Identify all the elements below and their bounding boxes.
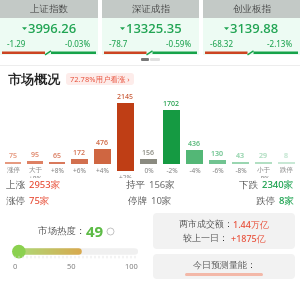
staticText: 1.44万亿 <box>233 218 269 230</box>
staticText: +6% <box>73 166 86 175</box>
button[interactable]: 95 <box>24 92 46 178</box>
staticText: 476 <box>96 138 109 148</box>
staticText: 130 <box>211 149 224 159</box>
button[interactable]: 75 <box>2 92 24 178</box>
button[interactable]: 72.78%用户看涨 › <box>66 73 134 85</box>
staticText: -78.7 <box>109 38 128 49</box>
staticText: 72.78%用户看涨 › <box>70 74 130 84</box>
staticText: 市场热度： <box>38 225 86 237</box>
button[interactable]: 130 <box>206 92 229 178</box>
staticText: -4% <box>189 166 201 175</box>
staticText: 较上一日： <box>183 232 228 243</box>
button[interactable]: 停牌 <box>102 194 198 207</box>
staticText: 3139.88 <box>230 19 279 37</box>
button[interactable]: 两市成交额： <box>153 213 295 249</box>
staticText: 涨停 <box>7 166 20 174</box>
staticText: 跌停 <box>256 195 275 207</box>
staticText: 2145 <box>117 92 134 102</box>
staticText: 49 <box>86 221 104 241</box>
button[interactable]: 下跌 <box>198 178 294 191</box>
button[interactable]: 172 <box>68 92 91 178</box>
staticText: 今日预测量能： <box>193 259 256 270</box>
staticText: 小于 <box>257 166 270 174</box>
staticText: -1.29 <box>7 38 26 49</box>
staticText: 市场概况 <box>8 71 60 87</box>
staticText: +4% <box>96 166 109 175</box>
staticText: -8% <box>258 174 270 178</box>
staticText: 50 <box>67 261 76 271</box>
staticText: -0.03% <box>65 38 91 49</box>
staticText: -0.59% <box>166 38 192 49</box>
button[interactable]: 436 <box>183 92 206 178</box>
staticText: 跌停 <box>280 166 293 174</box>
staticText: 3996.26 <box>28 19 77 37</box>
button[interactable]: 29 <box>252 92 275 178</box>
staticText: 0% <box>144 166 154 175</box>
staticText: 2953家 <box>29 178 61 191</box>
staticText: 涨停 <box>6 195 25 207</box>
button[interactable]: 涨停 <box>6 194 102 207</box>
button[interactable]: 市场热度： <box>5 213 146 277</box>
button[interactable]: 1702 <box>160 92 183 178</box>
staticText: 2340家 <box>262 178 294 191</box>
staticText: 下跌 <box>239 179 258 191</box>
staticText: 创业板指 <box>233 3 271 15</box>
staticText: 停牌 <box>128 195 147 207</box>
staticText: 两市成交额： <box>179 218 233 229</box>
staticText: 上证指数 <box>30 3 68 15</box>
staticText: -68.32 <box>210 38 234 49</box>
button[interactable]: 今日预测量能： <box>153 254 295 279</box>
staticText: +2% <box>119 173 132 178</box>
staticText: 65 <box>53 151 62 161</box>
other: 说明 <box>107 228 114 235</box>
staticText: -8% <box>235 166 247 175</box>
staticText: +8% <box>29 174 42 178</box>
staticText: 75家 <box>29 194 50 207</box>
button[interactable]: 深证成指 <box>102 0 199 55</box>
staticText: 29 <box>259 151 268 161</box>
staticText: +1875亿 <box>231 232 266 244</box>
staticText: 100 <box>125 261 138 271</box>
staticText: 深证成指 <box>132 3 170 15</box>
button[interactable]: 创业板指 <box>203 0 300 55</box>
staticText: 上涨 <box>6 179 25 191</box>
button[interactable]: 跌停 <box>198 194 294 207</box>
staticText: -6% <box>212 166 224 175</box>
staticText: 1702 <box>163 99 180 109</box>
staticText: 156家 <box>149 178 175 191</box>
button[interactable]: 上涨 <box>6 178 102 191</box>
button[interactable]: 156 <box>137 92 160 178</box>
staticText: 95 <box>31 150 40 160</box>
staticText: -2% <box>166 166 178 175</box>
staticText: 持平 <box>126 179 145 191</box>
staticText: 10家 <box>151 194 172 207</box>
staticText: 43 <box>236 151 245 161</box>
button[interactable]: 8 <box>275 92 298 178</box>
staticText: 156 <box>142 148 155 158</box>
staticText: 172 <box>73 148 86 158</box>
button[interactable]: 65 <box>46 92 68 178</box>
staticText: 13325.35 <box>126 19 182 37</box>
staticText: 0 <box>13 261 18 271</box>
staticText: 8 <box>284 151 289 161</box>
staticText: 大于 <box>29 166 42 174</box>
staticText: 436 <box>188 139 201 149</box>
button[interactable]: 2145 <box>114 92 137 178</box>
button[interactable]: 持平 <box>102 178 198 191</box>
staticText: -2.13% <box>267 38 293 49</box>
staticText: +8% <box>51 166 64 175</box>
button[interactable]: 43 <box>229 92 252 178</box>
button[interactable]: 上证指数 <box>0 0 98 55</box>
staticText: 75 <box>9 151 18 161</box>
button[interactable]: 476 <box>91 92 114 178</box>
staticText: 8家 <box>279 194 294 207</box>
